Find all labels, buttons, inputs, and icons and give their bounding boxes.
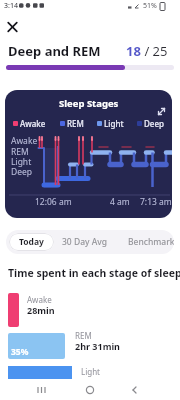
button[interactable] [30,382,50,400]
button[interactable]: Today [9,233,54,251]
staticText: REM [75,330,92,341]
staticText: Today [19,236,44,248]
staticText: Light [11,156,32,168]
button[interactable]: 30 Day Avg [58,233,112,251]
staticText: 2hr 31min [75,340,120,352]
staticText: 51% [143,1,157,11]
staticText: Light [81,366,101,377]
staticText: 30 Day Avg [62,236,108,248]
button[interactable] [4,18,22,36]
staticText: 12:06 am [35,196,72,208]
staticText: Awake [11,135,38,147]
staticText: 7:13 am [140,196,172,208]
staticText: Light [104,118,124,129]
button[interactable]: Sleep Stages [5,90,172,218]
staticText: Deep [11,166,33,178]
staticText: 18 [126,42,141,60]
staticText: / 25 [141,42,168,60]
staticText: Awake [20,118,46,129]
button[interactable]: Benchmark [125,233,174,251]
button[interactable] [80,382,100,400]
staticText: Awake [27,294,52,305]
staticText: Deep and REM [8,42,101,60]
staticText: Sleep Stages [59,97,119,110]
staticText: REM [11,146,29,158]
staticText: Benchmark [128,236,174,248]
staticText: 4 am [110,196,130,208]
staticText: 35% [11,346,29,358]
staticText: 3:14 [4,1,18,11]
staticText: REM [67,118,84,129]
button[interactable] [126,382,146,400]
staticText: Deep [144,118,164,129]
staticText: Time spent in each stage of sleep [8,266,180,280]
staticText: 28min [27,304,55,316]
